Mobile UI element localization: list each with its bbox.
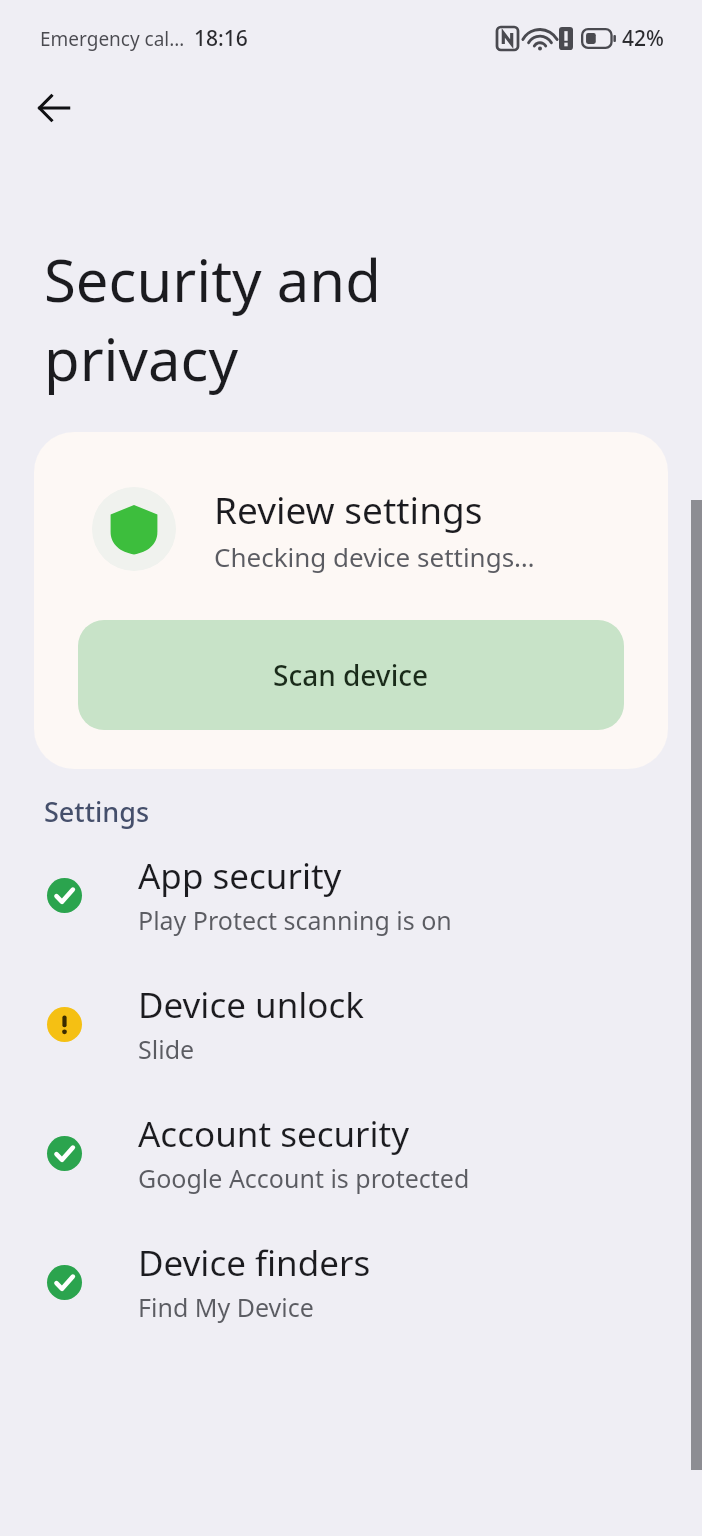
button[interactable]: Device unlock	[0, 981, 702, 1066]
button[interactable]: Review settings	[34, 432, 668, 769]
staticText: 42%	[622, 24, 664, 53]
staticText: Security and	[44, 240, 381, 319]
staticText: App security	[138, 852, 342, 900]
staticText: 18:16	[194, 24, 248, 53]
staticText: Review settings	[214, 484, 483, 534]
staticText: Scan device	[273, 656, 429, 694]
button[interactable]: App security	[0, 852, 702, 937]
staticText: Find My Device	[138, 1290, 314, 1324]
staticText: Account security	[138, 1110, 410, 1158]
staticText: Google Account is protected	[138, 1161, 470, 1195]
staticText: privacy	[44, 319, 239, 398]
button[interactable]: Scan device	[78, 620, 624, 730]
button[interactable]: Back	[22, 76, 86, 140]
staticText: Play Protect scanning is on	[138, 903, 452, 937]
staticText: Emergency cal…	[40, 26, 185, 52]
staticText: Settings	[44, 793, 150, 830]
staticText: Checking device settings…	[214, 539, 535, 574]
button[interactable]: Account security	[0, 1110, 702, 1195]
button[interactable]: Device finders	[0, 1239, 702, 1324]
staticText: Device finders	[138, 1239, 371, 1287]
staticText: Slide	[138, 1032, 195, 1066]
staticText: Device unlock	[138, 981, 364, 1029]
